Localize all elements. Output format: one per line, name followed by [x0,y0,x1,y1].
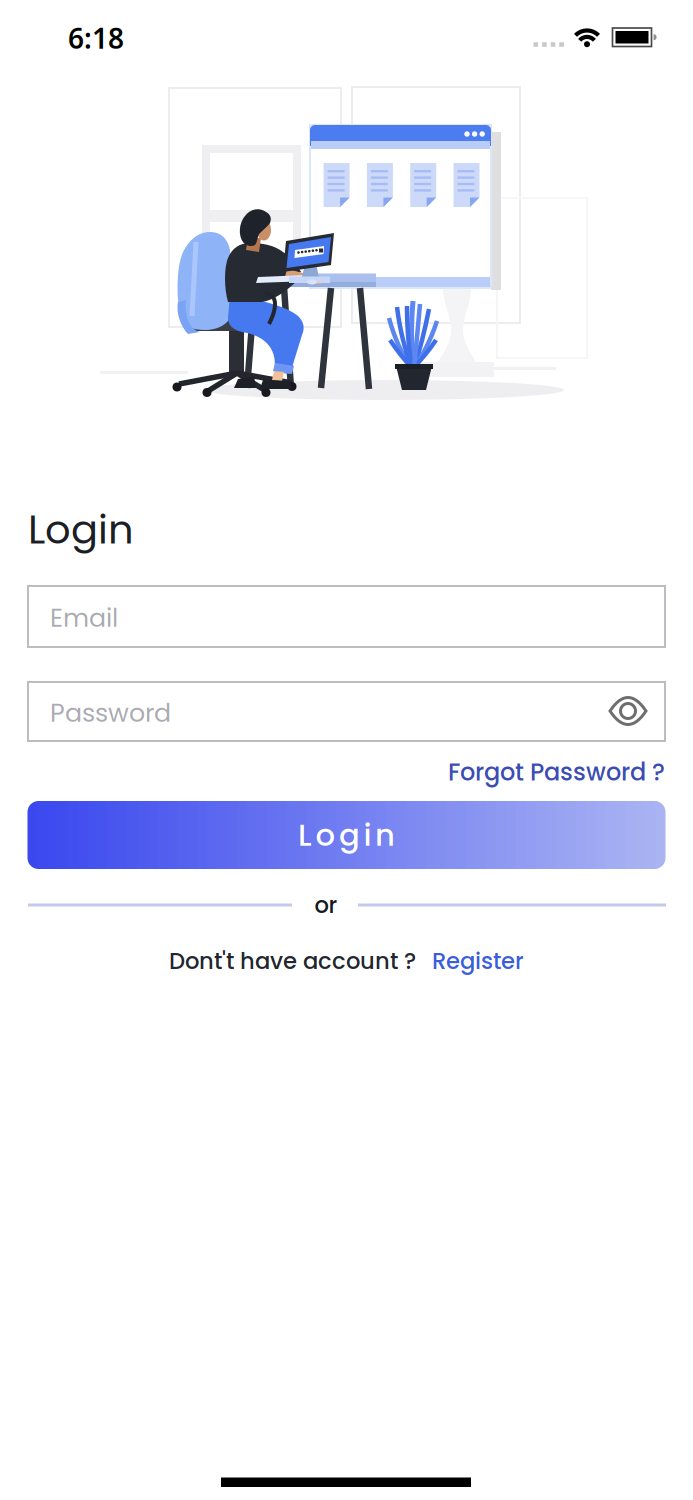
button[interactable]: Register [432,945,524,977]
staticText: or [314,889,337,921]
staticText: Login [298,813,395,856]
staticText: Dont't have account ? [169,945,416,977]
staticText: Password [50,695,171,731]
button[interactable]: Password [28,682,665,741]
button[interactable]: Forgot Password ? [448,755,665,789]
staticText: Login [28,501,134,557]
staticText: Register [432,945,524,977]
staticText: Email [50,600,118,636]
staticText: 6:18 [68,19,124,57]
staticText: Forgot Password ? [448,755,665,789]
button[interactable]: Login [27,801,665,869]
button[interactable]: Email [28,586,665,647]
